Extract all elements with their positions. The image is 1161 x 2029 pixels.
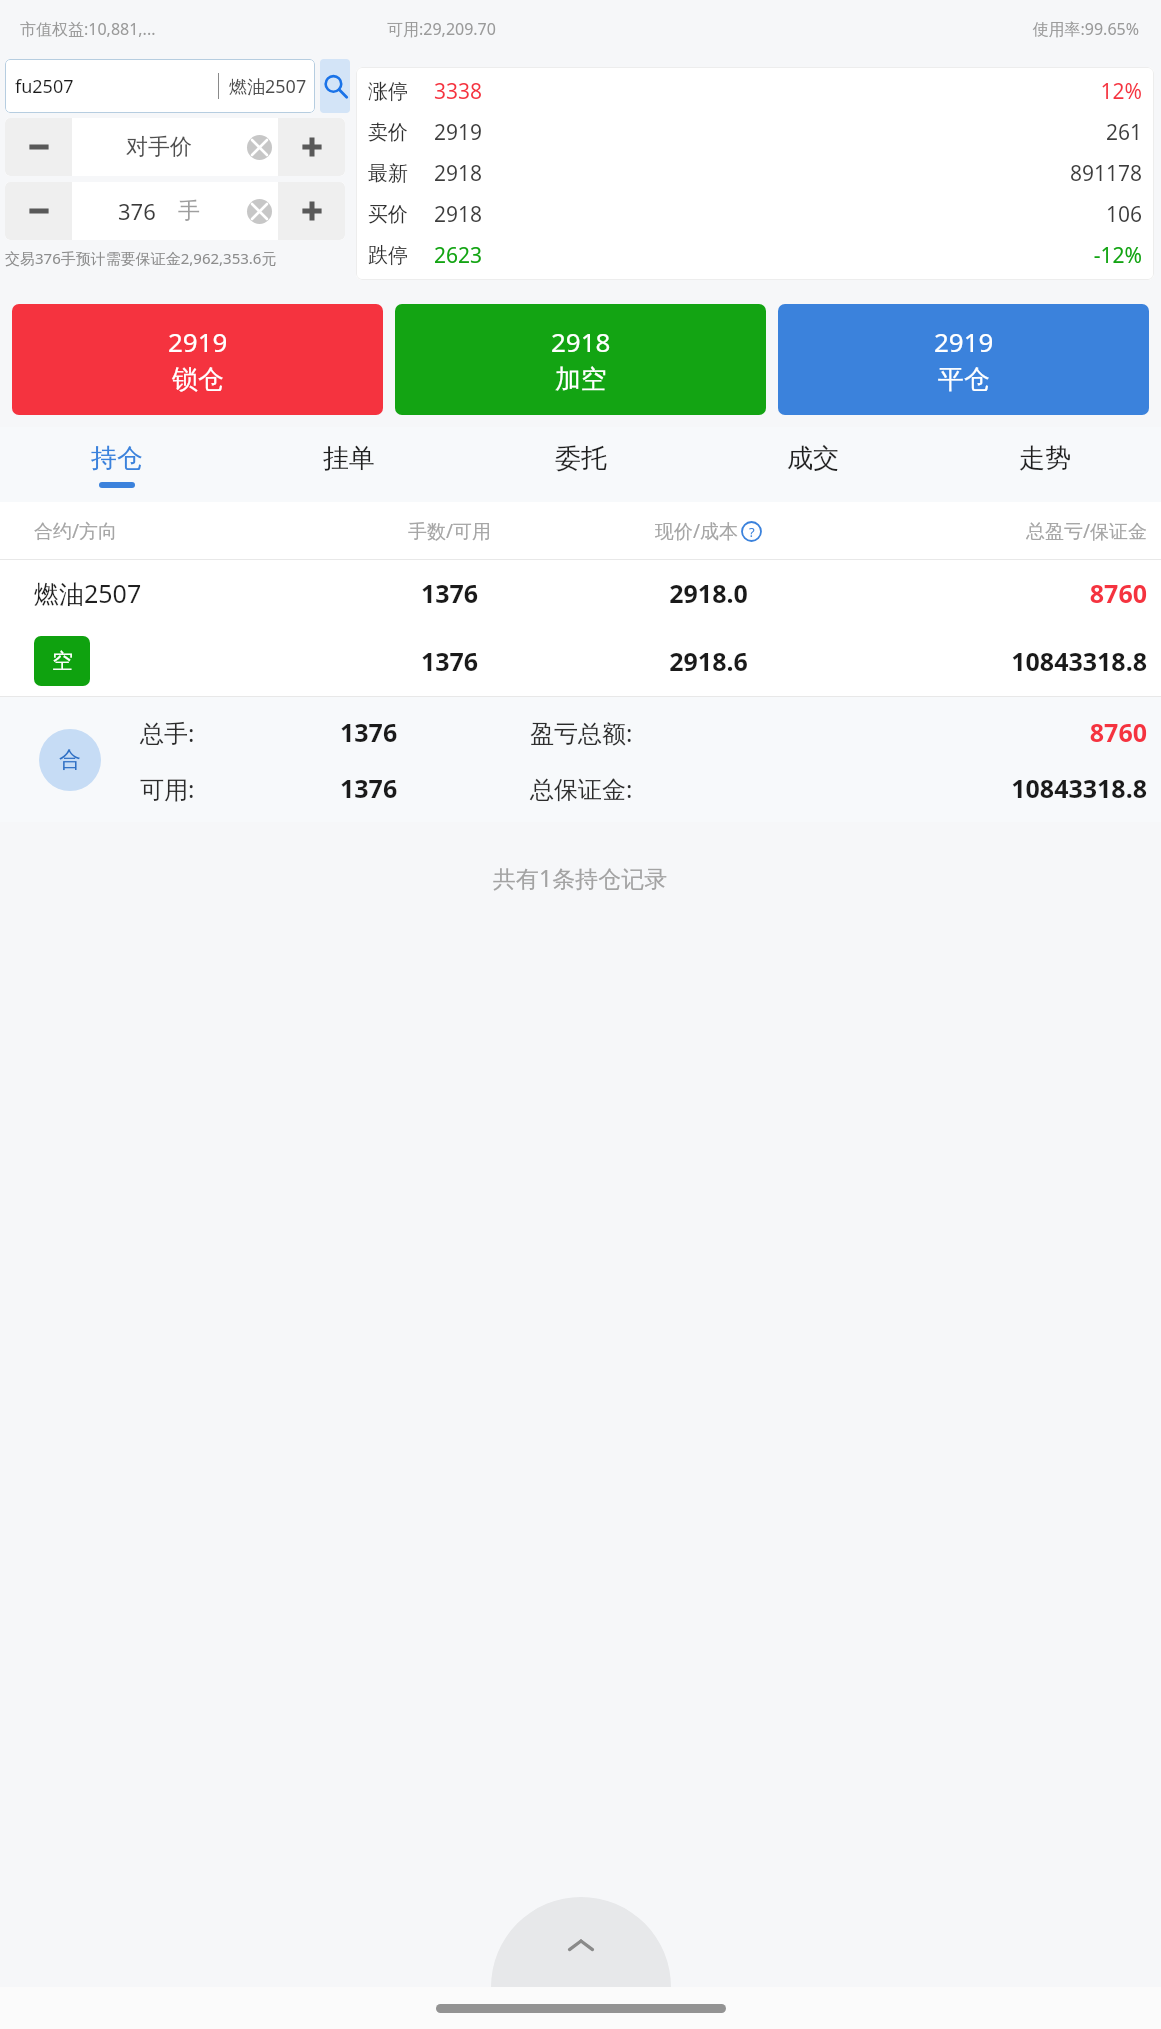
- button[interactable]: 对手价: [72, 118, 278, 176]
- button[interactable]: 委托: [465, 427, 697, 502]
- staticText: 涨停: [368, 79, 434, 104]
- staticText: 加空: [555, 363, 607, 396]
- button[interactable]: 持仓: [0, 427, 233, 502]
- staticText: 燃油2507: [34, 576, 320, 610]
- button[interactable]: 清除: [247, 199, 272, 224]
- staticText: 卖价: [368, 120, 434, 145]
- staticText: 2918.0: [579, 576, 838, 610]
- staticText: 1376: [340, 771, 530, 805]
- staticText: 891178: [522, 159, 1142, 188]
- staticText: 261: [522, 118, 1142, 147]
- button[interactable]: 展开: [491, 1897, 671, 1987]
- staticText: 平仓: [938, 363, 990, 396]
- staticText: 使用率:99.65%: [774, 18, 1139, 40]
- staticText: 376: [118, 196, 156, 226]
- staticText: 跌停: [368, 243, 434, 268]
- staticText: 106: [522, 200, 1142, 229]
- staticText: 市值权益:10,881,...: [20, 18, 387, 40]
- staticText: 可用:: [140, 772, 340, 805]
- staticText: 成交: [787, 442, 839, 475]
- button[interactable]: fu2507: [5, 59, 315, 113]
- staticText: 8760: [838, 576, 1147, 610]
- button[interactable]: 2919: [778, 304, 1149, 415]
- button[interactable]: 清除: [247, 135, 272, 160]
- staticText: 委托: [555, 442, 607, 475]
- staticText: 1376: [320, 576, 579, 610]
- staticText: 2919: [434, 118, 522, 147]
- staticText: ?: [749, 523, 755, 541]
- staticText: 总保证金:: [530, 772, 760, 805]
- staticText: 2918: [434, 159, 522, 188]
- staticText: 买价: [368, 202, 434, 227]
- button[interactable]: 成交: [697, 427, 929, 502]
- staticText: 10843318.8: [760, 771, 1147, 805]
- staticText: 2918: [434, 200, 522, 229]
- staticText: 8760: [760, 715, 1147, 749]
- staticText: 最新: [368, 161, 434, 186]
- staticText: 挂单: [323, 442, 375, 475]
- staticText: 交易376手预计需要保证金2,962,353.6元: [5, 248, 277, 268]
- staticText: 手: [178, 197, 200, 225]
- button[interactable]: 减少: [5, 182, 72, 240]
- staticText: 可用:29,209.70: [387, 18, 774, 40]
- button[interactable]: 增加: [278, 182, 345, 240]
- staticText: 3338: [434, 77, 522, 106]
- staticText: 燃油2507: [229, 74, 307, 99]
- staticText: 空: [52, 648, 73, 674]
- button[interactable]: 走势: [929, 427, 1161, 502]
- staticText: 共有1条持仓记录: [493, 862, 668, 893]
- button[interactable]: 2918: [395, 304, 766, 415]
- staticText: 手数/可用: [320, 518, 579, 544]
- staticText: 2919: [168, 324, 228, 359]
- button[interactable]: 减少: [5, 118, 72, 176]
- staticText: 锁仓: [172, 363, 224, 396]
- staticText: 对手价: [126, 133, 192, 161]
- staticText: 合约/方向: [34, 518, 320, 544]
- staticText: fu2507: [15, 74, 74, 99]
- staticText: 1376: [340, 715, 530, 749]
- staticText: 合: [59, 746, 81, 774]
- staticText: 总盈亏/保证金: [838, 518, 1147, 544]
- staticText: 2623: [434, 241, 522, 270]
- staticText: 10843318.8: [838, 644, 1147, 678]
- staticText: 总手:: [140, 716, 340, 749]
- button[interactable]: 2919: [12, 304, 383, 415]
- button[interactable]: 搜索: [320, 59, 350, 113]
- staticText: 持仓: [91, 442, 143, 475]
- staticText: 1376: [320, 644, 579, 678]
- staticText: -12%: [522, 241, 1142, 270]
- staticText: 走势: [1019, 442, 1071, 475]
- staticText: 盈亏总额:: [530, 716, 760, 749]
- button[interactable]: 376: [72, 182, 278, 240]
- staticText: 2918: [551, 324, 611, 359]
- staticText: 2919: [934, 324, 994, 359]
- staticText: 现价/成本: [655, 518, 739, 544]
- staticText: 2918.6: [579, 644, 838, 678]
- staticText: 12%: [522, 77, 1142, 106]
- button[interactable]: 增加: [278, 118, 345, 176]
- button[interactable]: 挂单: [233, 427, 465, 502]
